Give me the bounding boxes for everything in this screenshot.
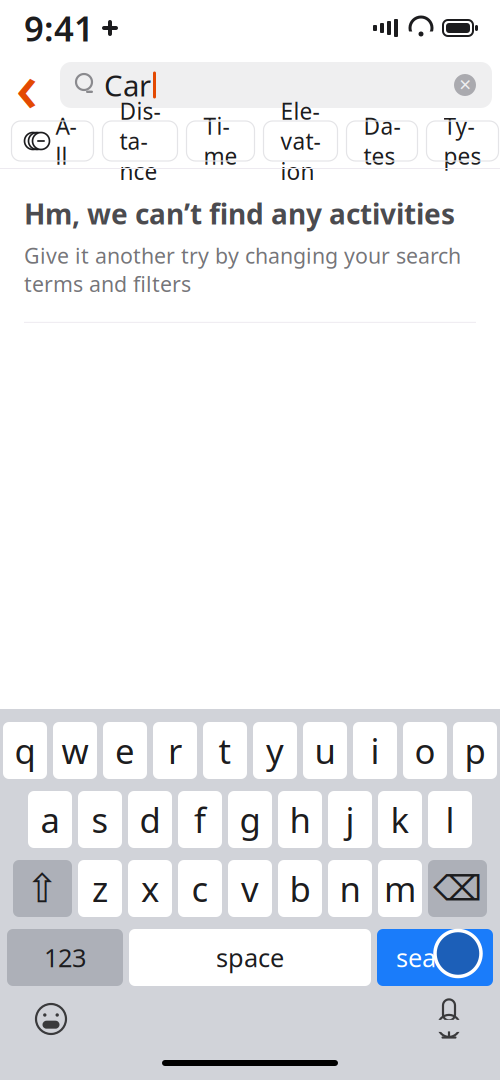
staticText: k	[390, 796, 409, 842]
staticText: ⌫	[433, 869, 482, 908]
staticText: g	[239, 796, 260, 842]
staticText: o	[414, 727, 435, 773]
button[interactable]: h	[278, 791, 322, 848]
button[interactable]: Clear search text	[452, 72, 492, 98]
staticText: u	[314, 727, 335, 773]
button[interactable]: m	[378, 860, 422, 917]
button[interactable]: e	[103, 722, 147, 779]
staticText: x	[141, 865, 159, 911]
staticText: Give it another try by changing your sea…	[24, 241, 461, 298]
button[interactable]: Types	[426, 121, 498, 161]
staticText: z	[92, 865, 108, 911]
button[interactable]: Elevation	[263, 121, 337, 161]
button[interactable]: z	[78, 860, 122, 917]
staticText: Types	[443, 111, 481, 171]
button[interactable]: p	[453, 722, 497, 779]
button[interactable]: Dictate	[422, 992, 476, 1046]
button[interactable]: space	[129, 929, 371, 986]
staticText: 9:41	[24, 5, 94, 51]
staticText: n	[339, 865, 360, 911]
button[interactable]: Delete	[428, 860, 487, 917]
staticText: Elevation	[280, 96, 320, 186]
staticText: t	[218, 727, 231, 773]
button[interactable]: u	[303, 722, 347, 779]
button[interactable]: r	[153, 722, 197, 779]
button[interactable]: n	[328, 860, 372, 917]
button[interactable]: x	[128, 860, 172, 917]
button[interactable]: Time	[186, 121, 254, 161]
staticText: w	[61, 727, 88, 773]
staticText: Car	[104, 65, 151, 104]
staticText: space	[216, 941, 284, 974]
staticText: 123	[44, 941, 86, 974]
button[interactable]: t	[203, 722, 247, 779]
button[interactable]: i	[353, 722, 397, 779]
button[interactable]: s	[78, 791, 122, 848]
staticText: i	[370, 727, 379, 773]
button[interactable]: q	[3, 722, 47, 779]
staticText: l	[445, 796, 454, 842]
staticText: a	[40, 796, 59, 842]
button[interactable]: Dates	[346, 121, 417, 161]
button[interactable]: j	[328, 791, 372, 848]
staticText: e	[115, 727, 135, 773]
button[interactable]: Back	[2, 59, 52, 111]
staticText: f	[194, 796, 206, 842]
button[interactable]: a	[28, 791, 72, 848]
button[interactable]: 123	[7, 929, 123, 986]
staticText: b	[289, 865, 310, 911]
staticText: All	[55, 111, 76, 171]
staticText: j	[345, 796, 354, 842]
button[interactable]: search	[377, 929, 493, 986]
staticText: ✕	[458, 76, 471, 94]
staticText: d	[139, 796, 160, 842]
staticText: ‹	[15, 39, 38, 131]
staticText: Time	[203, 111, 237, 171]
staticText: q	[14, 727, 35, 773]
button[interactable]: k	[378, 791, 422, 848]
button[interactable]: d	[128, 791, 172, 848]
button[interactable]: v	[228, 860, 272, 917]
staticText: y	[266, 727, 284, 773]
staticText: r	[168, 727, 182, 773]
staticText: v	[241, 865, 259, 911]
staticText: c	[191, 865, 208, 911]
button[interactable]: b	[278, 860, 322, 917]
staticText: h	[289, 796, 310, 842]
button[interactable]: g	[228, 791, 272, 848]
button[interactable]: y	[253, 722, 297, 779]
staticText: Dates	[363, 111, 400, 171]
staticText: m	[384, 865, 416, 911]
staticText: Hm, we can’t find any activities	[24, 195, 455, 232]
staticText: ⇧	[25, 866, 59, 911]
staticText: search	[396, 941, 474, 974]
button[interactable]: w	[53, 722, 97, 779]
button[interactable]: c	[178, 860, 222, 917]
button[interactable]: All	[11, 121, 93, 161]
staticText: p	[464, 727, 485, 773]
button[interactable]: f	[178, 791, 222, 848]
button[interactable]: Emoji keyboard	[24, 992, 78, 1046]
staticText: s	[91, 796, 108, 842]
button[interactable]: Shift	[13, 860, 72, 917]
button[interactable]: o	[403, 722, 447, 779]
staticText: Distance	[119, 96, 160, 186]
button[interactable]: Distance	[102, 121, 177, 161]
button[interactable]: l	[428, 791, 472, 848]
